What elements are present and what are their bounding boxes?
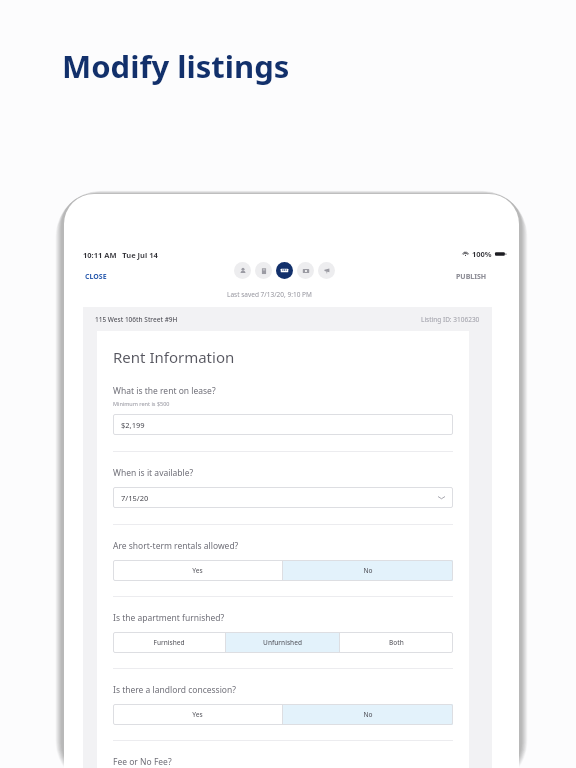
staticText: CLOSE [85,272,107,282]
staticText: What is the rent on lease? [113,385,216,397]
staticText: PUBLISH [456,272,487,282]
staticText: Unfurnished [263,638,302,647]
staticText: Are short-term rentals allowed? [113,540,239,552]
staticText: Furnished [153,638,185,647]
staticText: Both [389,638,404,647]
button[interactable]: $2,199 [113,414,453,435]
button[interactable]: Yes [113,560,282,581]
staticText: 7/15/20 [121,493,149,503]
staticText: Last saved 7/13/20, 9:10 PM [227,290,312,299]
staticText: 115 West 106th Street #9H [95,315,178,324]
staticText: Modify listings [62,45,290,87]
button[interactable]: PUBLISH [454,270,489,284]
staticText: Is there a landlord concession? [113,684,236,696]
button[interactable]: Both [340,632,453,653]
staticText: Yes [192,710,203,719]
staticText: Rent Information [113,347,235,367]
button[interactable]: Tenant details [234,262,251,279]
button[interactable]: Photos [297,262,314,279]
staticText: When is it available? [113,467,194,479]
button[interactable]: No [283,560,453,581]
button[interactable]: Unfurnished [226,632,339,653]
staticText: Is the apartment furnished? [113,612,225,624]
button[interactable]: Promote [318,262,335,279]
staticText: No [363,566,373,575]
button[interactable]: 7/15/20 [113,487,453,508]
button[interactable]: CLOSE [83,270,109,284]
staticText: Listing ID: 3106230 [421,315,480,324]
staticText: 10:11 AM Tue Jul 14 [83,250,158,260]
button[interactable]: Furnished [113,632,225,653]
staticText: Fee or No Fee? [113,756,172,768]
button[interactable]: Rent information [276,262,293,279]
staticText: $2,199 [121,420,145,430]
button[interactable]: Building details [255,262,272,279]
button[interactable]: No [283,704,453,725]
button[interactable]: Yes [113,704,282,725]
staticText: Yes [192,566,203,575]
staticText: No [363,710,373,719]
staticText: 100% [472,249,492,259]
staticText: Minimum rent is $500 [113,400,170,407]
